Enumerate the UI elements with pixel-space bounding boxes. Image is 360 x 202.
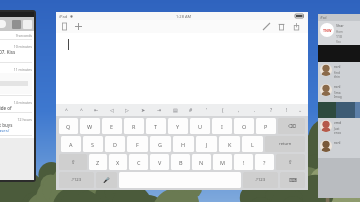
button[interactable]: B — [171, 154, 190, 170]
staticText: 12 hours — [0, 117, 32, 122]
staticText: ? — [270, 107, 273, 114]
staticText: A — [69, 141, 73, 148]
button[interactable]: Hide shortcuts — [295, 104, 305, 116]
button[interactable]: Z — [89, 154, 107, 170]
button[interactable]: ! — [234, 154, 253, 170]
button[interactable]: Shortcut ^ — [74, 104, 89, 116]
button[interactable]: Backspace — [278, 118, 305, 134]
button[interactable]: Shortcut ' — [199, 104, 215, 116]
staticText: R — [132, 123, 136, 130]
button[interactable]: Shortcut ? — [263, 104, 279, 116]
button[interactable]: Shortcut ! — [279, 104, 295, 116]
button[interactable]: Shortcut ◁ — [104, 104, 119, 116]
staticText: Hom — [336, 30, 343, 34]
staticText: outside of — [0, 105, 12, 111]
button[interactable]: Shortcut ➤ — [135, 104, 151, 116]
button[interactable]: X — [109, 154, 127, 170]
staticText: ' — [206, 107, 208, 114]
button[interactable]: Delete — [277, 22, 286, 31]
button[interactable]: return — [265, 136, 305, 152]
staticText: G — [158, 141, 163, 148]
button[interactable]: .?123 — [59, 172, 94, 188]
button[interactable]: ronl — [320, 64, 360, 80]
button[interactable]: Shortcut , — [231, 104, 247, 116]
button[interactable]: Share — [292, 22, 301, 31]
button[interactable]: O — [234, 118, 254, 134]
button[interactable]: F — [127, 136, 148, 152]
staticText: , — [238, 107, 240, 114]
staticText: K — [228, 141, 232, 148]
staticText: ronl — [334, 140, 341, 145]
staticText: 110 — [336, 34, 342, 39]
button[interactable]: Shortcut ▤ — [167, 104, 183, 116]
button[interactable]: vmd — [320, 120, 360, 136]
button[interactable]: K — [219, 136, 240, 152]
button[interactable]: C — [129, 154, 148, 170]
button[interactable]: Shortcut ^ — [59, 104, 74, 116]
button[interactable]: Notes list — [60, 22, 69, 31]
staticText: 1:28 AM — [176, 14, 192, 19]
button[interactable]: Shortcut # — [183, 104, 199, 116]
button[interactable]: Shortcut ( — [215, 104, 231, 116]
button[interactable]: T — [146, 118, 166, 134]
staticText: find thin — [334, 71, 340, 79]
button[interactable]: R — [124, 118, 144, 134]
staticText: n 2007. Kiss but — [0, 49, 16, 61]
button[interactable]: Shift — [59, 154, 87, 170]
button[interactable]: Q — [59, 118, 78, 134]
button[interactable]: Draw — [262, 22, 271, 31]
button[interactable]: Shortcut ▷ — [119, 104, 135, 116]
button[interactable]: D — [105, 136, 125, 152]
button[interactable]: M — [213, 154, 232, 170]
button[interactable]: ? — [255, 154, 274, 170]
staticText: ronl — [334, 84, 341, 89]
staticText: N — [199, 159, 204, 166]
button[interactable]: J — [196, 136, 217, 152]
staticText: ^ — [80, 107, 83, 114]
button[interactable]: G — [150, 136, 171, 152]
staticText: X — [116, 159, 120, 166]
button[interactable]: Dictate — [96, 172, 117, 188]
staticText: Y — [176, 123, 180, 130]
staticText: 11 minutes — [0, 67, 32, 72]
button[interactable]: ronl — [320, 140, 360, 156]
button[interactable]: P — [256, 118, 276, 134]
staticText: Rea — [336, 40, 341, 43]
button[interactable]: .?123 — [243, 172, 278, 188]
button[interactable]: Phone on the right showing a social feed — [318, 14, 360, 198]
button[interactable]: W — [80, 118, 100, 134]
button[interactable]: I — [212, 118, 232, 134]
staticText: ⇥ — [157, 107, 162, 113]
button[interactable]: Y — [168, 118, 188, 134]
button[interactable]: Shift right — [276, 154, 305, 170]
staticText: Shar — [336, 23, 344, 28]
staticText: M — [220, 159, 225, 166]
button[interactable]: L — [242, 136, 263, 152]
button[interactable]: V — [150, 154, 169, 170]
button[interactable]: New note — [74, 22, 83, 31]
button[interactable]: N — [192, 154, 211, 170]
staticText: E — [110, 123, 114, 130]
button[interactable]: Shortcut ⇥ — [151, 104, 167, 116]
staticText: Sma Imag — [334, 91, 342, 99]
staticText: ! — [286, 107, 288, 114]
staticText: TNW — [323, 28, 332, 33]
staticText: ▤ — [173, 107, 178, 113]
button[interactable]: Phone on the left showing a message list — [0, 12, 34, 180]
button[interactable]: A — [61, 136, 81, 152]
staticText: iPad — [59, 14, 68, 19]
button[interactable]: Hide keyboard — [280, 172, 305, 188]
button[interactable]: S — [83, 136, 103, 152]
staticText: ⌄ — [298, 107, 303, 113]
button[interactable]: H — [173, 136, 194, 152]
button[interactable]: Shortcut ⇤ — [89, 104, 104, 116]
staticText: ⌫ — [288, 123, 296, 129]
button[interactable]: U — [190, 118, 210, 134]
button[interactable]: E — [102, 118, 122, 134]
staticText: ➤ — [141, 107, 146, 113]
staticText: O — [242, 123, 247, 130]
staticText: ⌨ — [289, 177, 297, 183]
button[interactable]: ronl — [320, 84, 360, 100]
